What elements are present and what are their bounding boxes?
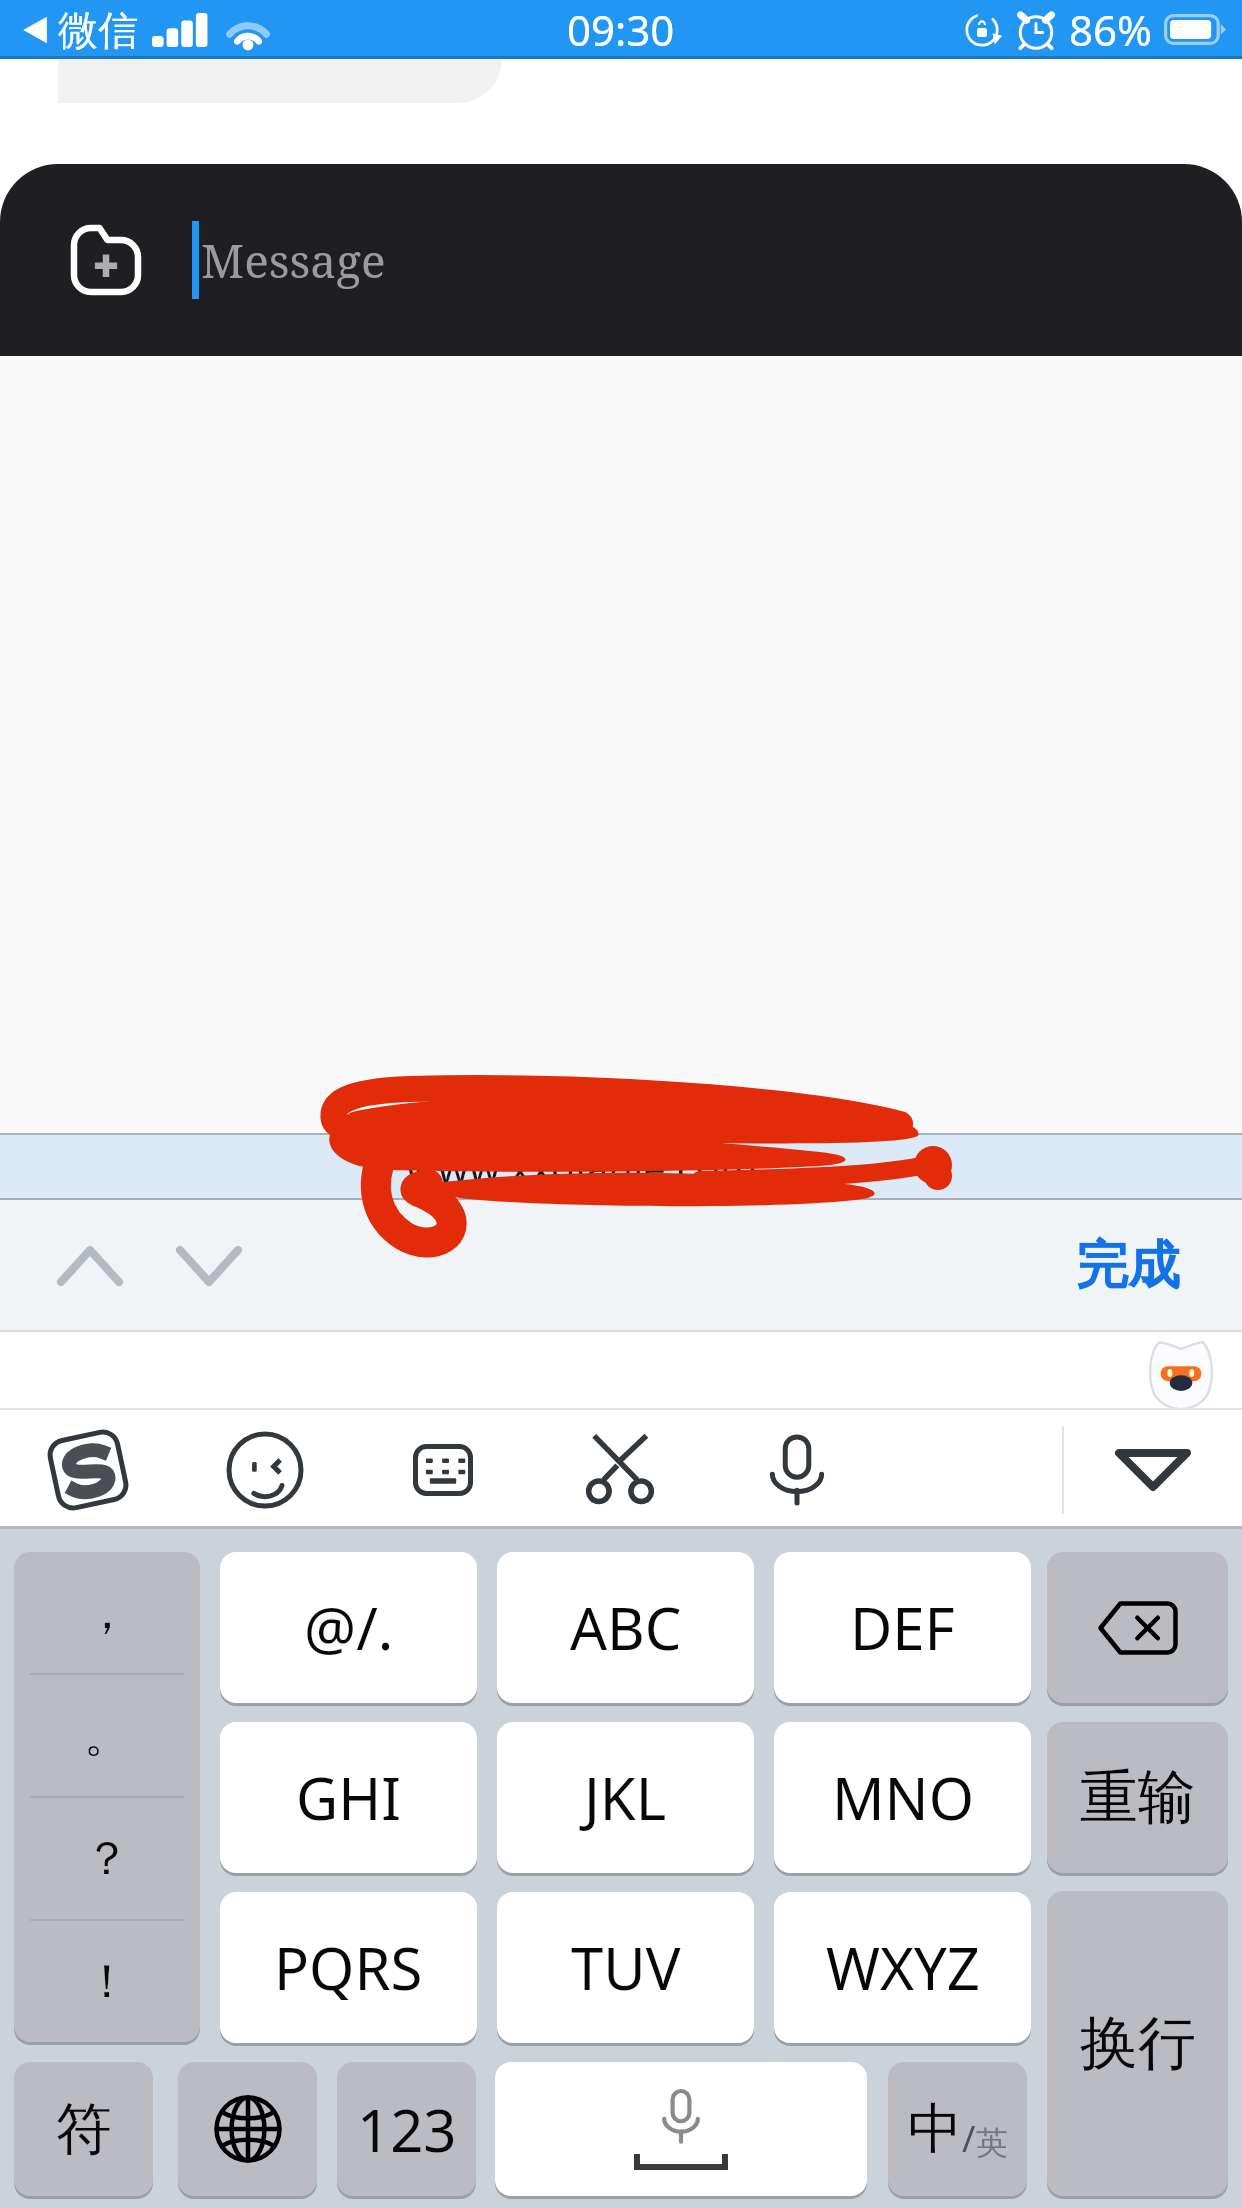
- staticText: ABC: [570, 1588, 682, 1667]
- staticText: www.xxdianle.com: [406, 1140, 758, 1194]
- staticText: JKL: [584, 1758, 667, 1837]
- staticText: 完成: [1076, 1233, 1180, 1299]
- button[interactable]: Next field: [154, 1211, 264, 1321]
- staticText: WXYZ: [826, 1928, 980, 2007]
- button[interactable]: Add attachment: [70, 224, 142, 296]
- button[interactable]: WXYZ: [774, 1892, 1031, 2043]
- button[interactable]: 123: [337, 2062, 476, 2196]
- staticText: 符: [56, 2094, 112, 2165]
- staticText: DEF: [850, 1588, 955, 1667]
- button[interactable]: DEF: [774, 1552, 1031, 1703]
- button[interactable]: Space, voice input: [495, 2062, 867, 2196]
- staticText: 换行: [1080, 2007, 1196, 2080]
- button[interactable]: JKL: [497, 1722, 754, 1873]
- button[interactable]: PQRS: [220, 1892, 477, 2043]
- button[interactable]: Change language: [178, 2062, 317, 2196]
- button[interactable]: 中/英: [888, 2062, 1027, 2196]
- staticText: Message: [201, 229, 386, 292]
- button[interactable]: 符: [14, 2062, 153, 2196]
- button[interactable]: MNO: [774, 1722, 1031, 1873]
- staticText: ？: [84, 1830, 130, 1888]
- button[interactable]: 换行: [1047, 1891, 1228, 2196]
- button[interactable]: GHI: [220, 1722, 477, 1873]
- button[interactable]: 重输: [1047, 1722, 1228, 1873]
- button[interactable]: Punctuation: [14, 1552, 200, 2042]
- button[interactable]: 完成: [1076, 1200, 1180, 1332]
- button[interactable]: ABC: [497, 1552, 754, 1703]
- staticText: PQRS: [274, 1928, 423, 2007]
- button[interactable]: Sogou input: [28, 1410, 148, 1529]
- button[interactable]: Backspace: [1047, 1552, 1228, 1703]
- staticText: ！: [84, 1953, 130, 2011]
- staticText: TUV: [571, 1928, 681, 2007]
- staticText: 微信: [58, 5, 138, 55]
- button[interactable]: @/.: [220, 1552, 477, 1703]
- staticText: 重输: [1080, 1761, 1196, 1834]
- button[interactable]: Add attachment: [0, 164, 1242, 356]
- staticText: @/.: [304, 1588, 394, 1667]
- staticText: ，: [84, 1584, 130, 1642]
- button[interactable]: Clipboard: [560, 1410, 680, 1529]
- button[interactable]: TUV: [497, 1892, 754, 2043]
- button[interactable]: Hide keyboard: [1064, 1410, 1242, 1529]
- button[interactable]: Keyboard layouts: [383, 1410, 503, 1529]
- staticText: 09:30: [567, 1, 675, 58]
- staticText: MNO: [832, 1758, 974, 1837]
- staticText: 英: [976, 2123, 1008, 2163]
- button[interactable]: www.xxdianle.com: [0, 1133, 1242, 1200]
- staticText: 123: [357, 2090, 457, 2169]
- button[interactable]: Voice input: [737, 1410, 857, 1529]
- button[interactable]: Input method logo: [1142, 1332, 1220, 1410]
- staticText: GHI: [296, 1758, 401, 1837]
- staticText: 。: [84, 1707, 130, 1765]
- button[interactable]: Previous field: [35, 1211, 145, 1321]
- staticText: 86%: [1069, 1, 1152, 58]
- staticText: /: [962, 2114, 976, 2163]
- staticText: 中: [908, 2095, 962, 2163]
- button[interactable]: Emoji: [205, 1410, 325, 1529]
